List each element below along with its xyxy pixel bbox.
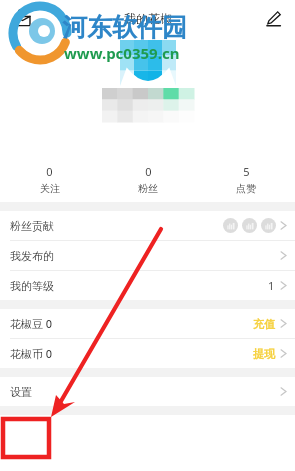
button[interactable]: 5 — [197, 156, 295, 202]
staticText: 粉丝贡献 — [10, 219, 54, 233]
staticText: 我发布的 — [10, 249, 54, 263]
staticText: 粉丝 — [138, 182, 158, 195]
staticText: 花椒币 0 — [10, 346, 53, 361]
staticText: 充值 — [253, 317, 275, 331]
button[interactable]: 0 — [0, 156, 99, 202]
staticText: 我的等级 — [10, 279, 54, 293]
staticText: 设置 — [10, 385, 32, 399]
staticText: 花椒豆 0 — [10, 316, 53, 331]
button[interactable]: 我发布的 — [0, 241, 295, 270]
staticText: 点赞 — [236, 182, 256, 195]
button[interactable]: 我的等级 — [0, 271, 295, 300]
button[interactable]: Edit profile — [259, 4, 287, 32]
staticText: 0 — [46, 164, 53, 179]
button[interactable]: 花椒币 0 — [0, 339, 295, 368]
staticText: www.pc0359.cn — [64, 43, 180, 63]
staticText: 1 — [268, 278, 275, 293]
button[interactable]: 0 — [99, 156, 197, 202]
staticText: 提现 — [253, 347, 275, 361]
staticText: 5 — [243, 164, 250, 179]
button[interactable]: 花椒豆 0 — [0, 309, 295, 338]
button[interactable]: 设置 — [0, 377, 295, 406]
button[interactable]: Messages — [8, 4, 36, 32]
staticText: 关注 — [40, 182, 60, 195]
staticText: 0 — [145, 164, 152, 179]
staticText: 我的花椒 — [124, 11, 172, 26]
button[interactable]: 粉丝贡献 — [0, 211, 295, 240]
staticText: 河东软件园 — [62, 12, 187, 43]
